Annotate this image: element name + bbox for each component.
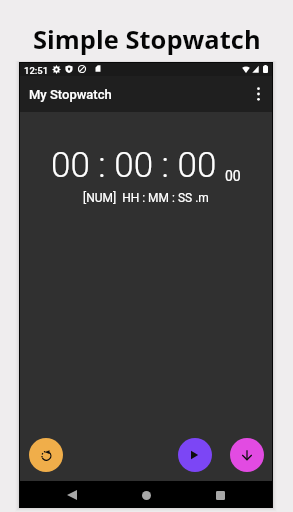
- button[interactable]: Home: [136, 485, 156, 505]
- staticText: [NUM] HH : MM : SS .m: [83, 191, 209, 205]
- staticText: 00 : 00 : 00: [51, 145, 217, 186]
- button[interactable]: Recents: [210, 485, 230, 505]
- button[interactable]: Back: [62, 485, 82, 505]
- staticText: 00: [225, 168, 241, 184]
- staticText: My Stopwatch: [29, 87, 112, 102]
- button[interactable]: Start: [178, 438, 212, 472]
- button[interactable]: More options: [245, 81, 271, 107]
- button[interactable]: Save lap: [230, 438, 264, 472]
- staticText: Simple Stopwatch: [33, 22, 261, 57]
- staticText: 12:51: [24, 65, 49, 76]
- button[interactable]: Reset: [29, 438, 63, 472]
